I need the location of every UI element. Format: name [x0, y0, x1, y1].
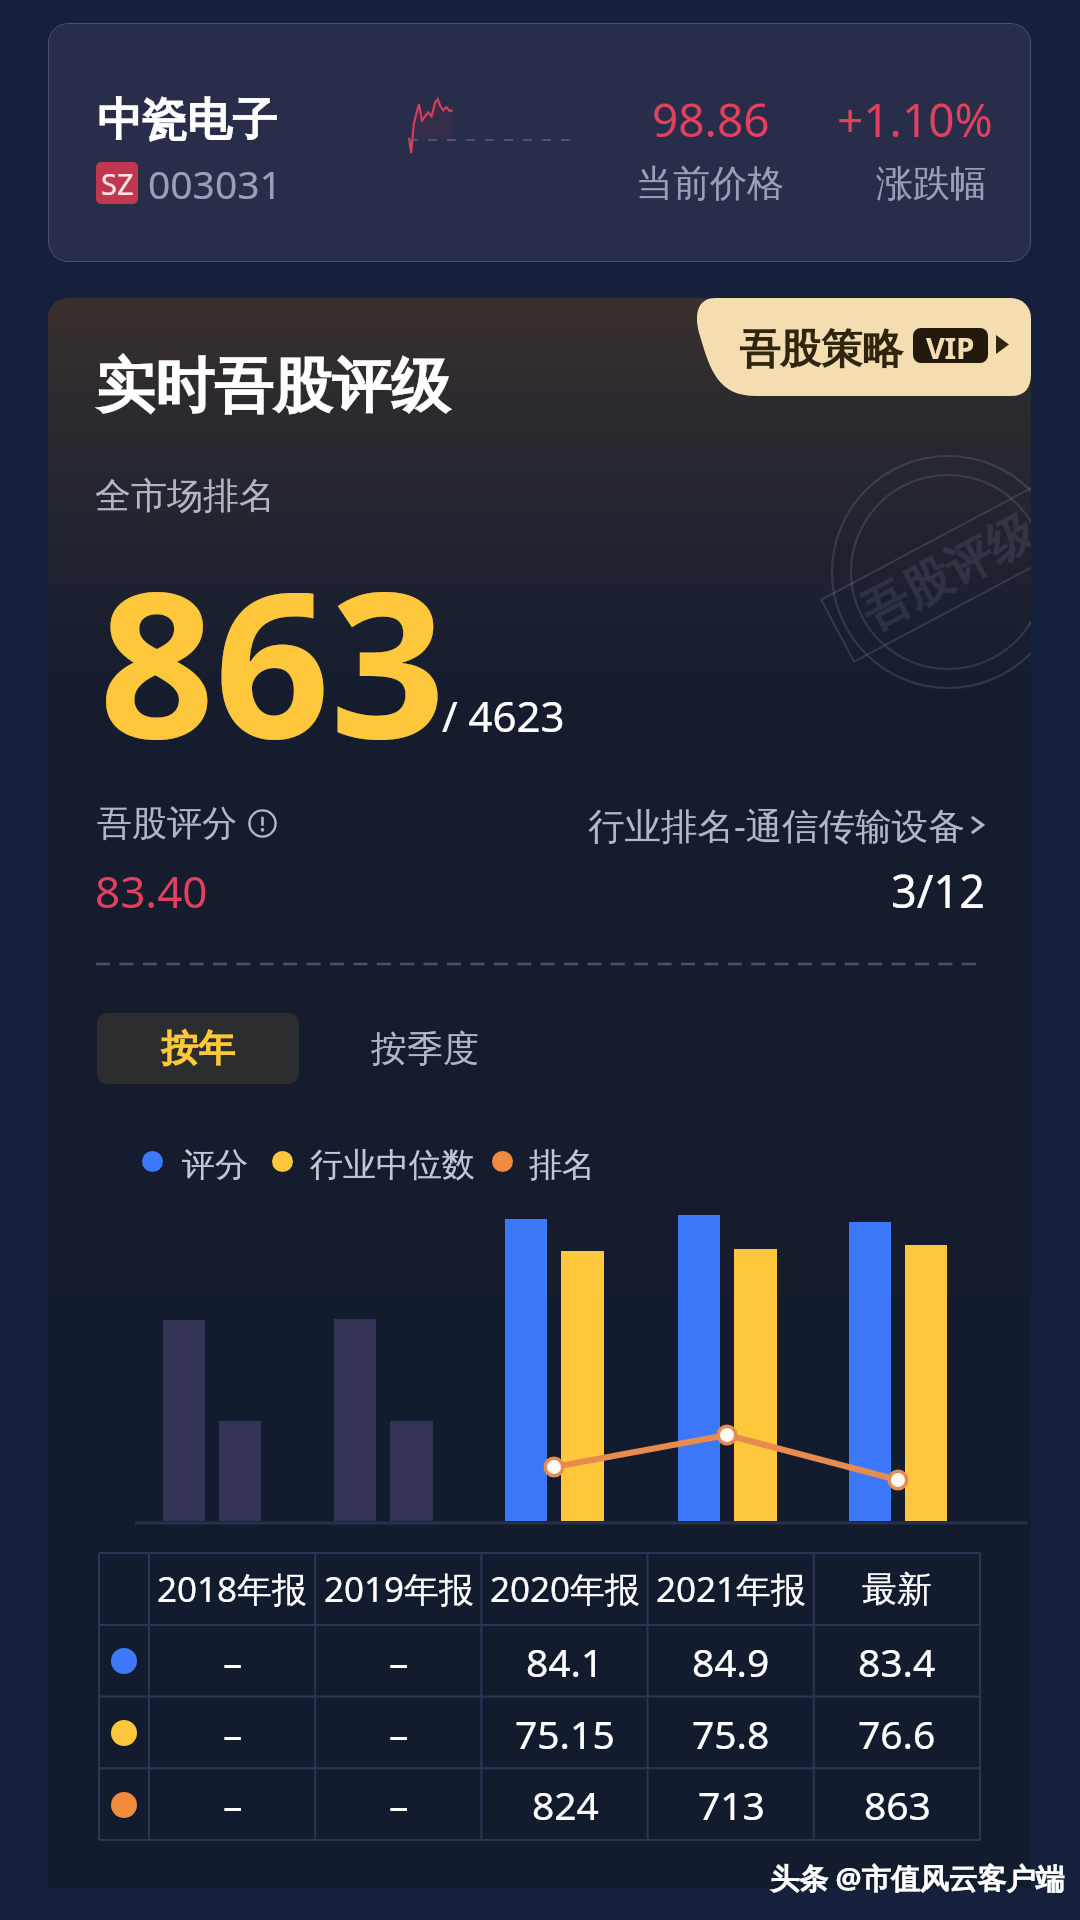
staticText: 当前价格 — [636, 160, 784, 207]
button[interactable]: 行业排名-通信传输设备 — [535, 800, 991, 850]
staticText: 排名 — [529, 1144, 595, 1186]
staticText: 涨跌幅 — [876, 160, 987, 207]
staticText: 最新 — [862, 1567, 932, 1611]
staticText: 003031 — [148, 157, 282, 210]
staticText: 实时吾股评级 — [96, 349, 450, 423]
staticText: 行业排名-通信传输设备 — [588, 800, 965, 850]
staticText: 75.15 — [515, 1707, 615, 1760]
button[interactable]: 中瓷电子 — [48, 23, 1031, 262]
staticText: 713 — [698, 1778, 765, 1831]
staticText: 863 — [99, 522, 446, 797]
staticText: – — [223, 1778, 243, 1831]
staticText: 吾股评级 — [851, 502, 1031, 643]
staticText: – — [223, 1707, 243, 1760]
staticText: 83.4 — [858, 1635, 936, 1688]
staticText: 824 — [532, 1778, 599, 1831]
staticText: 按年 — [161, 1025, 235, 1072]
staticText: 2019年报 — [324, 1565, 475, 1613]
staticText: VIP — [926, 328, 975, 363]
staticText: 吾股策略 — [739, 324, 903, 376]
staticText: 2020年报 — [490, 1565, 641, 1613]
staticText: 84.9 — [692, 1635, 770, 1688]
staticText: 76.6 — [858, 1707, 936, 1760]
staticText: SZ — [101, 164, 134, 203]
other: Open VIP strategy — [996, 335, 1009, 354]
staticText: 84.1 — [526, 1635, 604, 1688]
staticText: 中瓷电子 — [97, 92, 277, 149]
staticText: 头条 @市值风云客户端 — [770, 1858, 1065, 1898]
staticText: 全市场排名 — [95, 473, 275, 518]
staticText: – — [389, 1778, 409, 1831]
button[interactable]: 按年 — [97, 1013, 299, 1084]
staticText: / 4623 — [442, 687, 565, 744]
staticText: 按季度 — [371, 1026, 479, 1071]
staticText: 98.86 — [652, 88, 770, 151]
staticText: 863 — [864, 1778, 931, 1831]
staticText: – — [223, 1635, 243, 1688]
staticText: 2018年报 — [157, 1565, 308, 1613]
staticText: 吾股评分 — [97, 801, 237, 845]
staticText: 3/12 — [891, 860, 985, 921]
staticText: 评分 — [182, 1144, 248, 1186]
staticText: 行业中位数 — [310, 1144, 475, 1186]
staticText: +1.10% — [837, 88, 993, 151]
button[interactable]: 按季度 — [335, 1013, 515, 1084]
staticText: 75.8 — [692, 1707, 770, 1760]
staticText: 83.40 — [95, 861, 208, 921]
staticText: 2021年报 — [656, 1565, 807, 1613]
staticText: – — [389, 1707, 409, 1760]
other: Info — [248, 809, 277, 838]
staticText: – — [389, 1635, 409, 1688]
button[interactable]: 吾股策略 — [694, 298, 1031, 396]
